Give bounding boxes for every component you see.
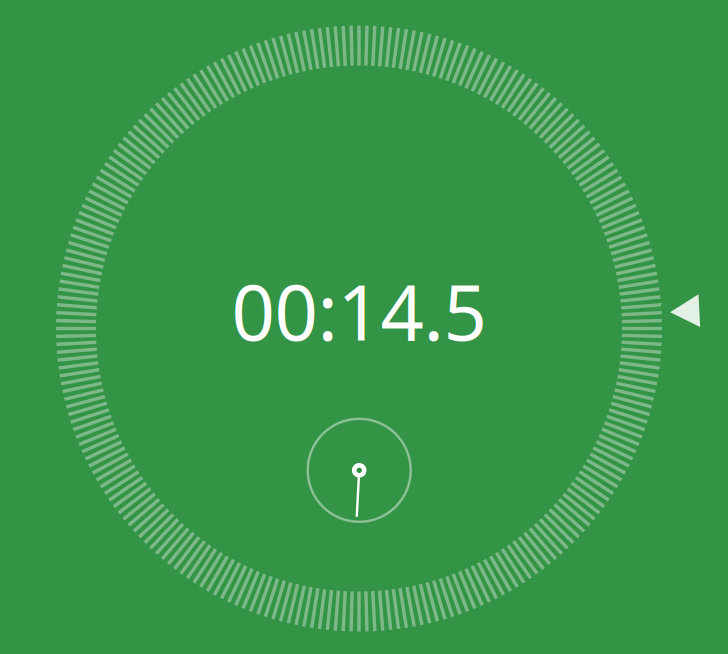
button[interactable]: Stopwatch, 00:14.5 elapsed. Tap to lap. (0, 0, 728, 654)
staticText: 00:14.5 (231, 260, 486, 361)
